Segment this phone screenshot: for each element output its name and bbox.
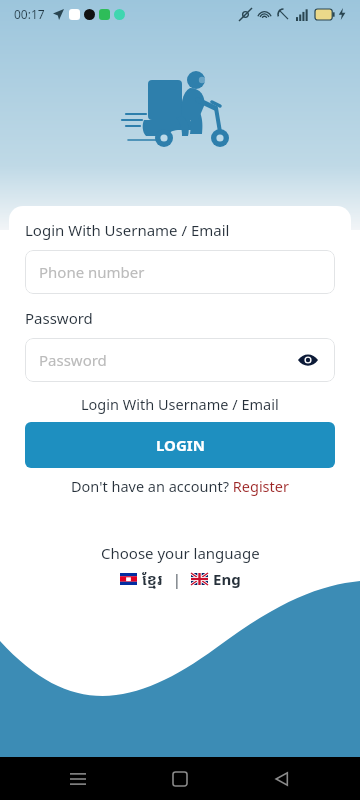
button[interactable]: LOGIN	[25, 422, 335, 468]
staticText: 00:17	[14, 6, 45, 22]
staticText: Password	[25, 308, 93, 328]
staticText: Password	[39, 350, 107, 370]
staticText: Login With Username / Email	[81, 394, 279, 414]
staticText: Choose your language	[101, 543, 260, 563]
button[interactable]: Password	[25, 338, 335, 382]
button[interactable]: Recent apps	[54, 757, 102, 800]
staticText: Don't have an account? Register	[71, 476, 289, 496]
button[interactable]: Eng	[189, 569, 243, 589]
staticText: Phone number	[39, 262, 145, 282]
staticText: |	[165, 569, 189, 589]
button[interactable]: Home	[156, 757, 204, 800]
button[interactable]: Don't have an account? Register	[25, 476, 335, 496]
button[interactable]: Show password	[295, 347, 321, 373]
staticText: Eng	[213, 569, 241, 589]
button[interactable]: Phone number	[25, 250, 335, 294]
staticText: Login With Username / Email	[25, 220, 230, 240]
button[interactable]: Back	[258, 757, 306, 800]
staticText: ខ្មែរ	[142, 569, 163, 589]
button[interactable]: ខ្មែរ	[118, 569, 165, 589]
staticText: LOGIN	[156, 435, 205, 455]
